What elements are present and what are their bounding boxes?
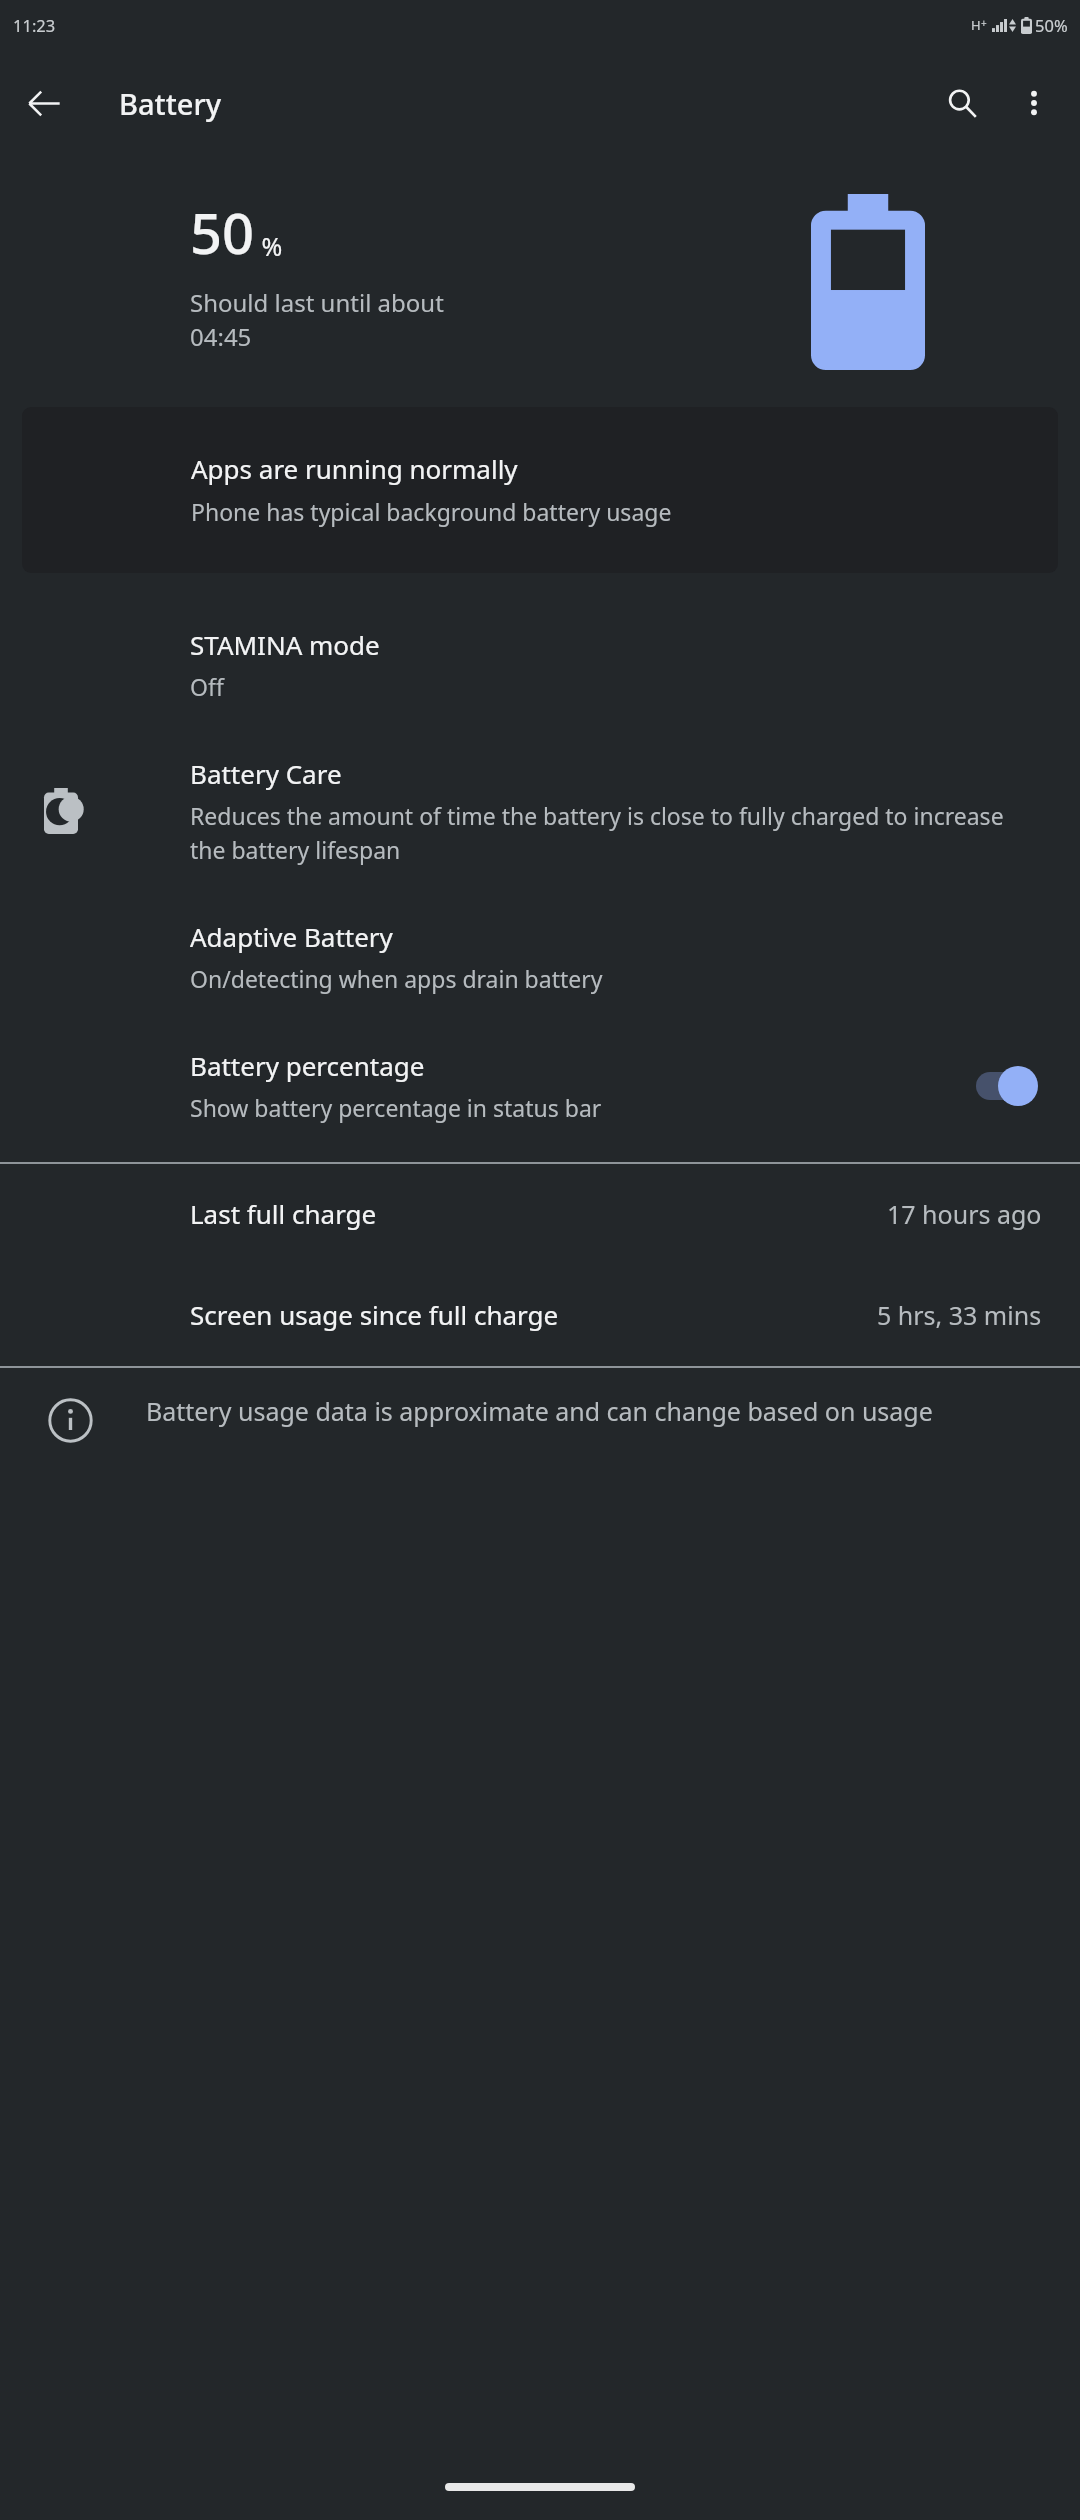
button[interactable]: Screen usage since full charge (0, 1265, 1080, 1366)
staticText: Screen usage since full charge (190, 1297, 559, 1332)
staticText: 5 hrs, 33 mins (877, 1298, 1042, 1332)
staticText: Should last until about 04:45 (190, 286, 444, 353)
staticText: Reduces the amount of time the battery i… (190, 800, 1040, 865)
staticText: Battery percentage (190, 1048, 425, 1083)
staticText: Last full charge (190, 1196, 377, 1231)
button[interactable]: Back (8, 67, 80, 139)
staticText: 50 (190, 194, 255, 270)
staticText: 11:23 (13, 14, 56, 36)
button[interactable]: Battery percentage (0, 1022, 1080, 1151)
staticText: On/detecting when apps drain battery (190, 963, 603, 994)
staticText: Apps are running normally (191, 451, 518, 486)
staticText: Battery (119, 84, 221, 123)
staticText: 17 hours ago (887, 1197, 1042, 1231)
staticText: Battery usage data is approximate and ca… (146, 1394, 933, 1428)
button[interactable]: Battery Care (0, 730, 1080, 893)
button[interactable]: Last full charge (0, 1164, 1080, 1265)
staticText: Battery Care (190, 756, 342, 791)
staticText: STAMINA mode (190, 627, 380, 662)
button[interactable]: STAMINA mode (0, 601, 1080, 730)
button[interactable]: Search (926, 67, 998, 139)
staticText: 50% (1035, 14, 1068, 36)
staticText: + (981, 16, 987, 30)
button[interactable]: Apps are running normally (22, 407, 1058, 573)
staticText: Off (190, 671, 224, 702)
staticText: Phone has typical background battery usa… (191, 496, 672, 527)
staticText: Show battery percentage in status bar (190, 1092, 602, 1123)
staticText: H (971, 16, 981, 34)
button[interactable]: More options (998, 67, 1070, 139)
button[interactable]: Adaptive Battery (0, 893, 1080, 1022)
staticText: % (255, 229, 283, 263)
staticText: Adaptive Battery (190, 919, 393, 954)
